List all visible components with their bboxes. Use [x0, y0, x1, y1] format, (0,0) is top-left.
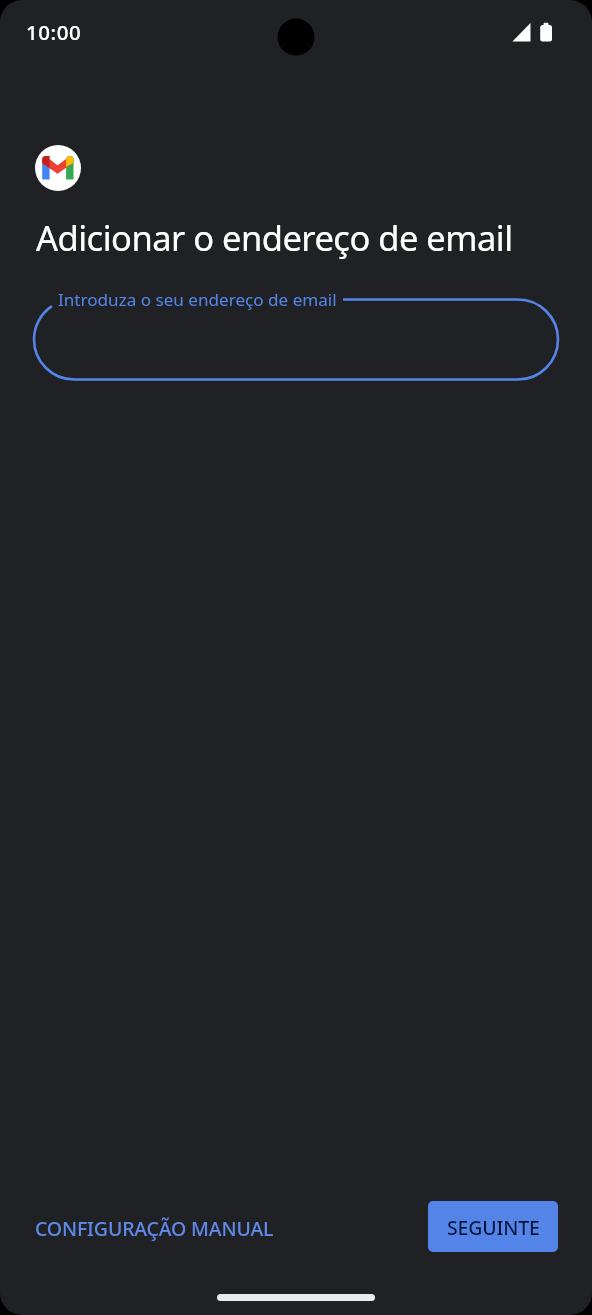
staticText: CONFIGURAÇÃO MANUAL — [35, 1215, 274, 1242]
staticText: Introduza o seu endereço de email — [58, 288, 337, 311]
button[interactable]: Introduza o seu endereço de email — [34, 299, 558, 380]
staticText: 10:00 — [26, 18, 82, 46]
other: Gmail — [35, 145, 81, 191]
staticText: Adicionar o endereço de email — [36, 214, 513, 261]
staticText: SEGUINTE — [447, 1214, 540, 1241]
button[interactable]: CONFIGURAÇÃO MANUAL — [26, 1206, 283, 1249]
button[interactable]: SEGUINTE — [428, 1201, 558, 1252]
